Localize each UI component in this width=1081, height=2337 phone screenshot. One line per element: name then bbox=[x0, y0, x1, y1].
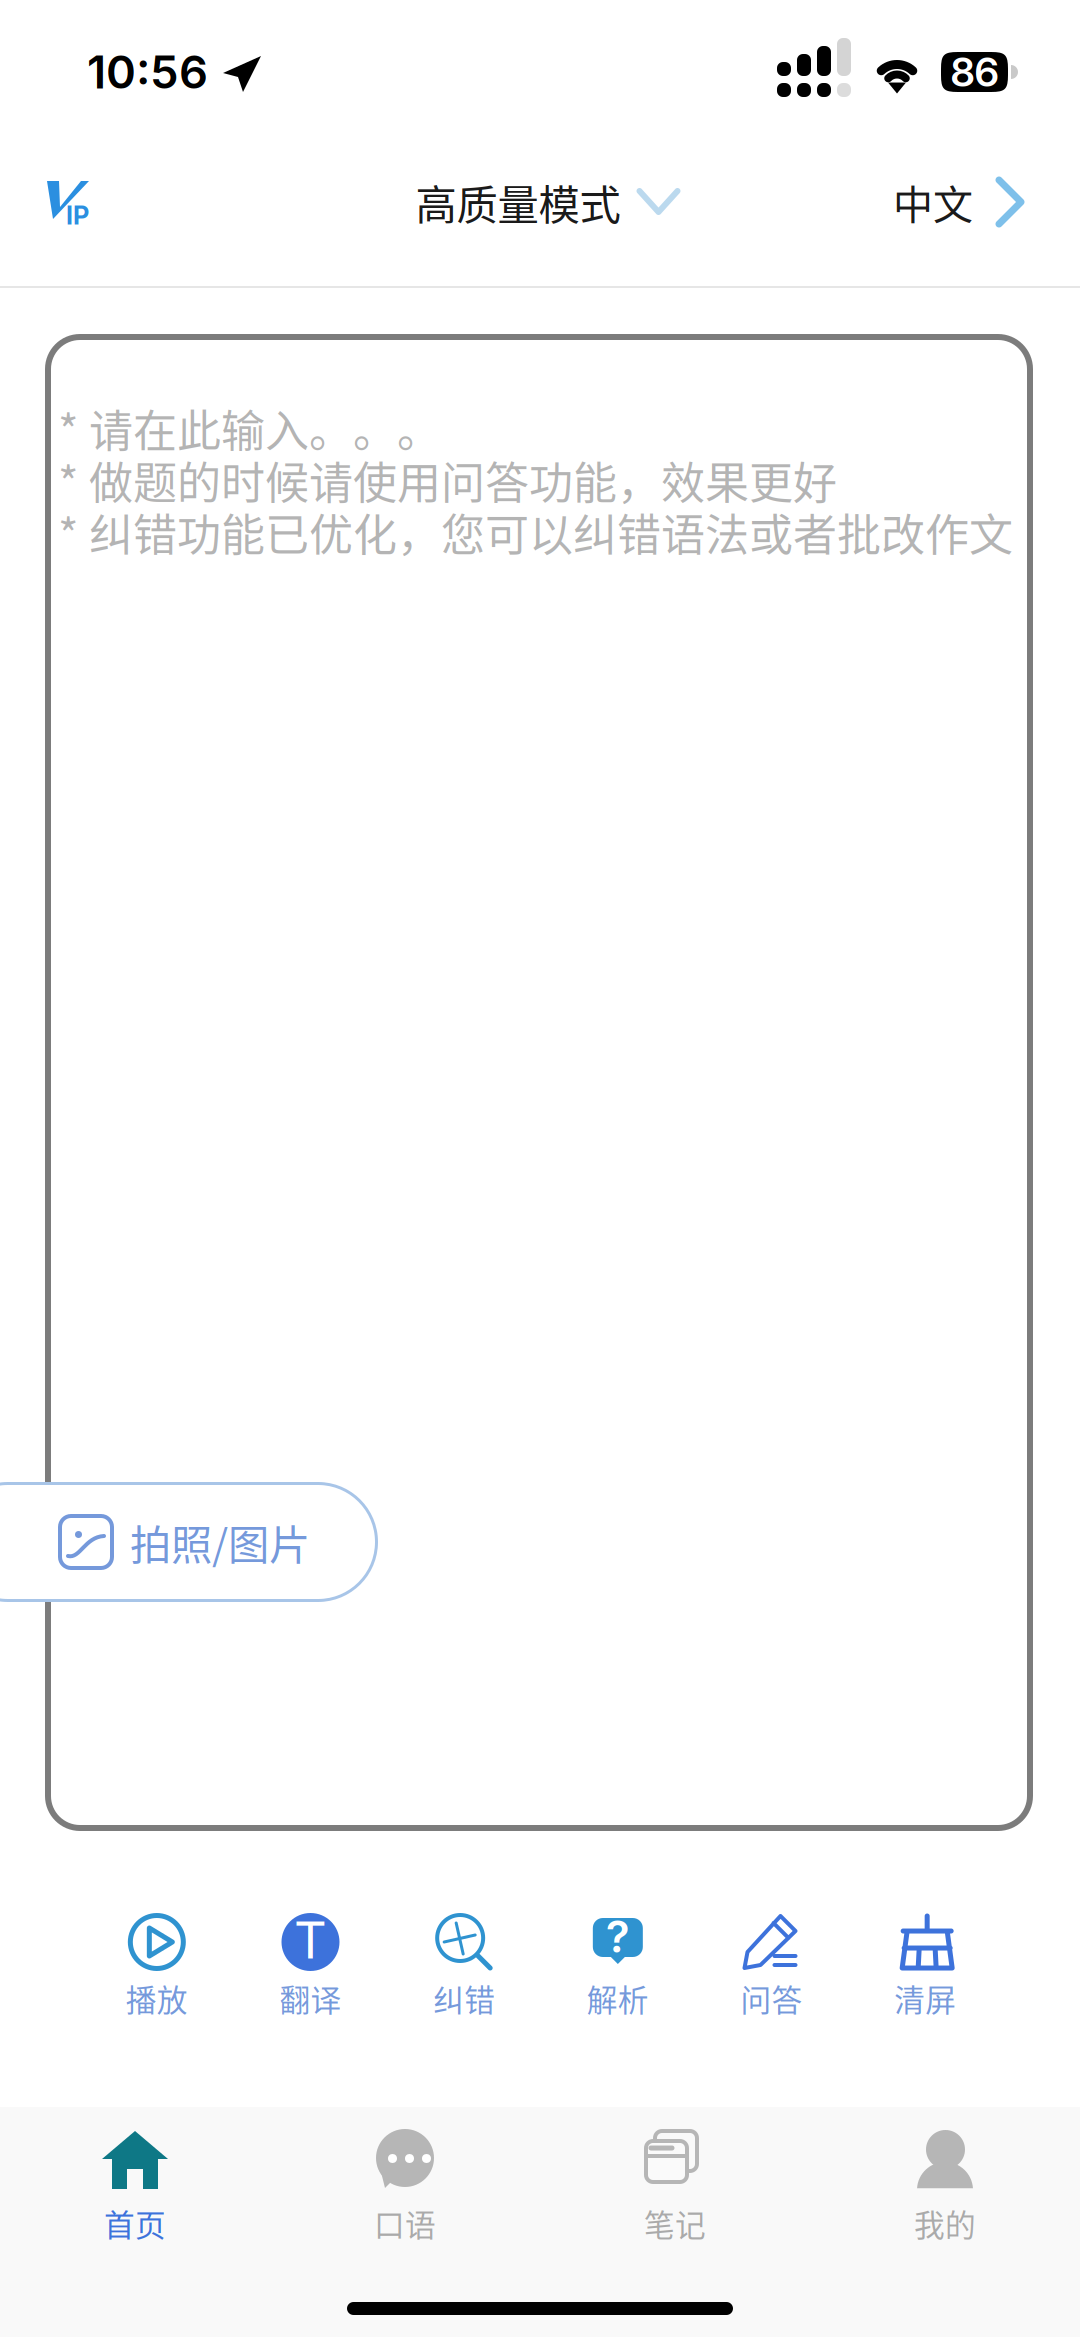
button[interactable]: 清屏 bbox=[848, 1908, 1002, 2024]
button[interactable]: T bbox=[234, 1908, 387, 2024]
staticText: * 做题的时候请使用问答功能，效果更好 bbox=[58, 448, 837, 512]
staticText: 首页 bbox=[104, 2201, 166, 2245]
button[interactable]: VIP bbox=[0, 173, 95, 243]
staticText: 我的 bbox=[914, 2201, 976, 2245]
staticText: 播放 bbox=[126, 1976, 188, 2020]
staticText: 解析 bbox=[587, 1976, 649, 2020]
staticText: T bbox=[294, 1909, 327, 1971]
button[interactable]: 问答 bbox=[695, 1908, 848, 2024]
staticText: 清屏 bbox=[894, 1976, 956, 2020]
staticText: ? bbox=[606, 1910, 630, 1963]
staticText: 中文 bbox=[893, 173, 973, 231]
staticText: 拍照/图片 bbox=[130, 1512, 310, 1572]
button[interactable]: 高质量模式 bbox=[407, 164, 672, 252]
staticText: 10:56 bbox=[87, 45, 208, 99]
button[interactable]: 我的 bbox=[810, 2107, 1080, 2259]
button[interactable]: 中文 bbox=[893, 165, 1080, 251]
staticText: 口语 bbox=[374, 2201, 436, 2245]
staticText: * 纠错功能已优化，您可以纠错语法或者批改作文 bbox=[58, 500, 1013, 564]
button[interactable]: 纠错 bbox=[387, 1908, 541, 2024]
staticText: 问答 bbox=[740, 1976, 802, 2020]
button[interactable]: 口语 bbox=[270, 2107, 540, 2259]
button[interactable]: ? bbox=[541, 1908, 695, 2024]
button[interactable]: 笔记 bbox=[540, 2107, 810, 2259]
staticText: 笔记 bbox=[644, 2201, 706, 2245]
button[interactable]: 拍照/图片 bbox=[0, 1482, 378, 1602]
staticText: 86 bbox=[950, 48, 998, 96]
button[interactable]: 首页 bbox=[0, 2107, 270, 2259]
button[interactable]: 播放 bbox=[80, 1908, 234, 2024]
staticText: 高质量模式 bbox=[415, 172, 620, 232]
staticText: IP bbox=[66, 200, 89, 231]
staticText: * 请在此输入。。。 bbox=[58, 396, 441, 460]
staticText: 翻译 bbox=[279, 1976, 341, 2020]
staticText: 纠错 bbox=[433, 1976, 495, 2020]
